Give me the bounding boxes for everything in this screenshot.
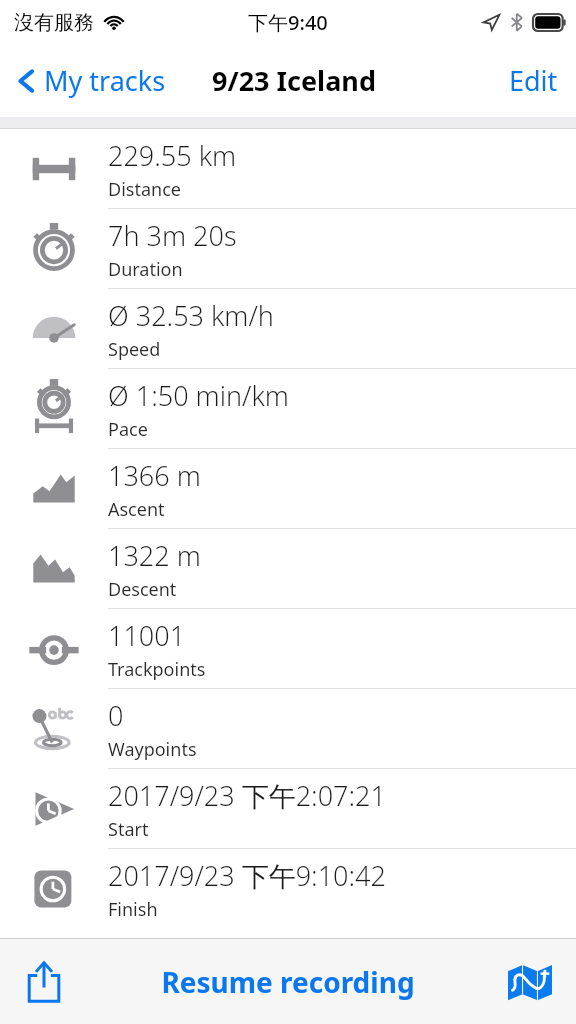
button[interactable]: Share [16, 951, 72, 1013]
staticText: 2017/9/23 下午9:10:42 [108, 857, 386, 894]
staticText: Resume recording [161, 963, 415, 1001]
staticText: 229.55 km [108, 137, 237, 174]
button[interactable]: 1322 m [0, 529, 576, 609]
staticText: 11001 [108, 617, 186, 654]
staticText: 7h 3m 20s [108, 217, 237, 254]
button[interactable]: Resume recording [143, 953, 433, 1011]
staticText: My tracks [44, 62, 166, 99]
button[interactable]: Map [500, 955, 560, 1009]
button[interactable]: 0 [0, 689, 576, 769]
staticText: 下午9:40 [248, 9, 328, 36]
button[interactable]: 2017/9/23 下午9:10:42 [0, 849, 576, 929]
staticText: Descent [108, 577, 177, 602]
staticText: Edit [509, 62, 558, 99]
staticText: Waypoints [108, 737, 197, 762]
staticText: Distance [108, 177, 181, 202]
staticText: Speed [108, 337, 161, 362]
staticText: Start [108, 817, 149, 842]
staticText: 1366 m [108, 457, 201, 494]
staticText: Trackpoints [108, 657, 206, 682]
staticText: Ø 1:50 min/km [108, 377, 289, 414]
button[interactable]: Ø 32.53 km/h [0, 289, 576, 369]
button[interactable]: Edit [505, 56, 562, 105]
button[interactable]: 2017/9/23 下午2:07:21 [0, 769, 576, 849]
button[interactable]: My tracks [12, 56, 170, 105]
staticText: 沒有服務 [14, 10, 94, 35]
staticText: 0 [108, 697, 124, 734]
staticText: Ascent [108, 497, 165, 522]
staticText: Ø 32.53 km/h [108, 297, 274, 334]
staticText: 2017/9/23 下午2:07:21 [108, 777, 386, 814]
staticText: 1322 m [108, 537, 201, 574]
button[interactable]: 11001 [0, 609, 576, 689]
button[interactable]: 1366 m [0, 449, 576, 529]
button[interactable]: 229.55 km [0, 129, 576, 209]
staticText: 9/23 Iceland [212, 62, 376, 99]
staticText: Duration [108, 257, 183, 282]
staticText: Finish [108, 897, 158, 922]
button[interactable]: Ø 1:50 min/km [0, 369, 576, 449]
button[interactable]: 7h 3m 20s [0, 209, 576, 289]
staticText: Pace [108, 417, 148, 442]
